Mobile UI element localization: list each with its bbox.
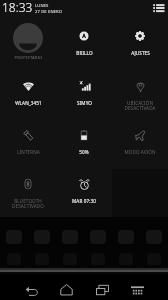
staticText: WLAN_3451 <box>15 100 42 106</box>
staticText: BLUETOOTH DESACTIVADO <box>12 198 44 210</box>
staticText: PROPIETARIO <box>14 55 43 61</box>
staticText: UBICACIÓN DESACTIVADA <box>124 100 156 112</box>
button[interactable]: Recents <box>85 278 119 300</box>
button[interactable]: MODO AVIÓN <box>112 119 168 165</box>
button[interactable]: BRILLO <box>56 20 112 66</box>
button[interactable]: Home <box>49 278 83 300</box>
button[interactable]: PROPIETARIO <box>0 18 56 64</box>
staticText: 50% <box>79 149 89 155</box>
button[interactable]: 50% <box>56 119 112 165</box>
staticText: 18:33 <box>2 0 33 14</box>
staticText: 27 DE ENERO <box>35 9 63 15</box>
staticText: MAR 07:30 <box>72 198 96 204</box>
button[interactable]: SIMYO <box>56 70 112 116</box>
staticText: MODO AVIÓN <box>124 149 156 155</box>
staticText: AJUSTES <box>131 50 150 56</box>
staticText: LINTERNA <box>17 149 40 155</box>
button[interactable]: WLAN_3451 <box>0 70 56 116</box>
button[interactable]: UBICACIÓN DESACTIVADA <box>112 70 168 116</box>
button[interactable]: MAR 07:30 <box>56 168 112 214</box>
staticText: LUNES <box>35 3 49 9</box>
button[interactable]: AJUSTES <box>112 20 168 66</box>
button[interactable]: Keyboard <box>120 278 154 300</box>
staticText: SIMYO <box>77 100 92 106</box>
button[interactable]: Back <box>14 278 48 300</box>
button[interactable]: LINTERNA <box>0 119 56 165</box>
staticText: BRILLO <box>76 50 93 56</box>
button[interactable]: BLUETOOTH DESACTIVADO <box>0 168 56 214</box>
button[interactable]: Quick settings <box>151 0 166 15</box>
